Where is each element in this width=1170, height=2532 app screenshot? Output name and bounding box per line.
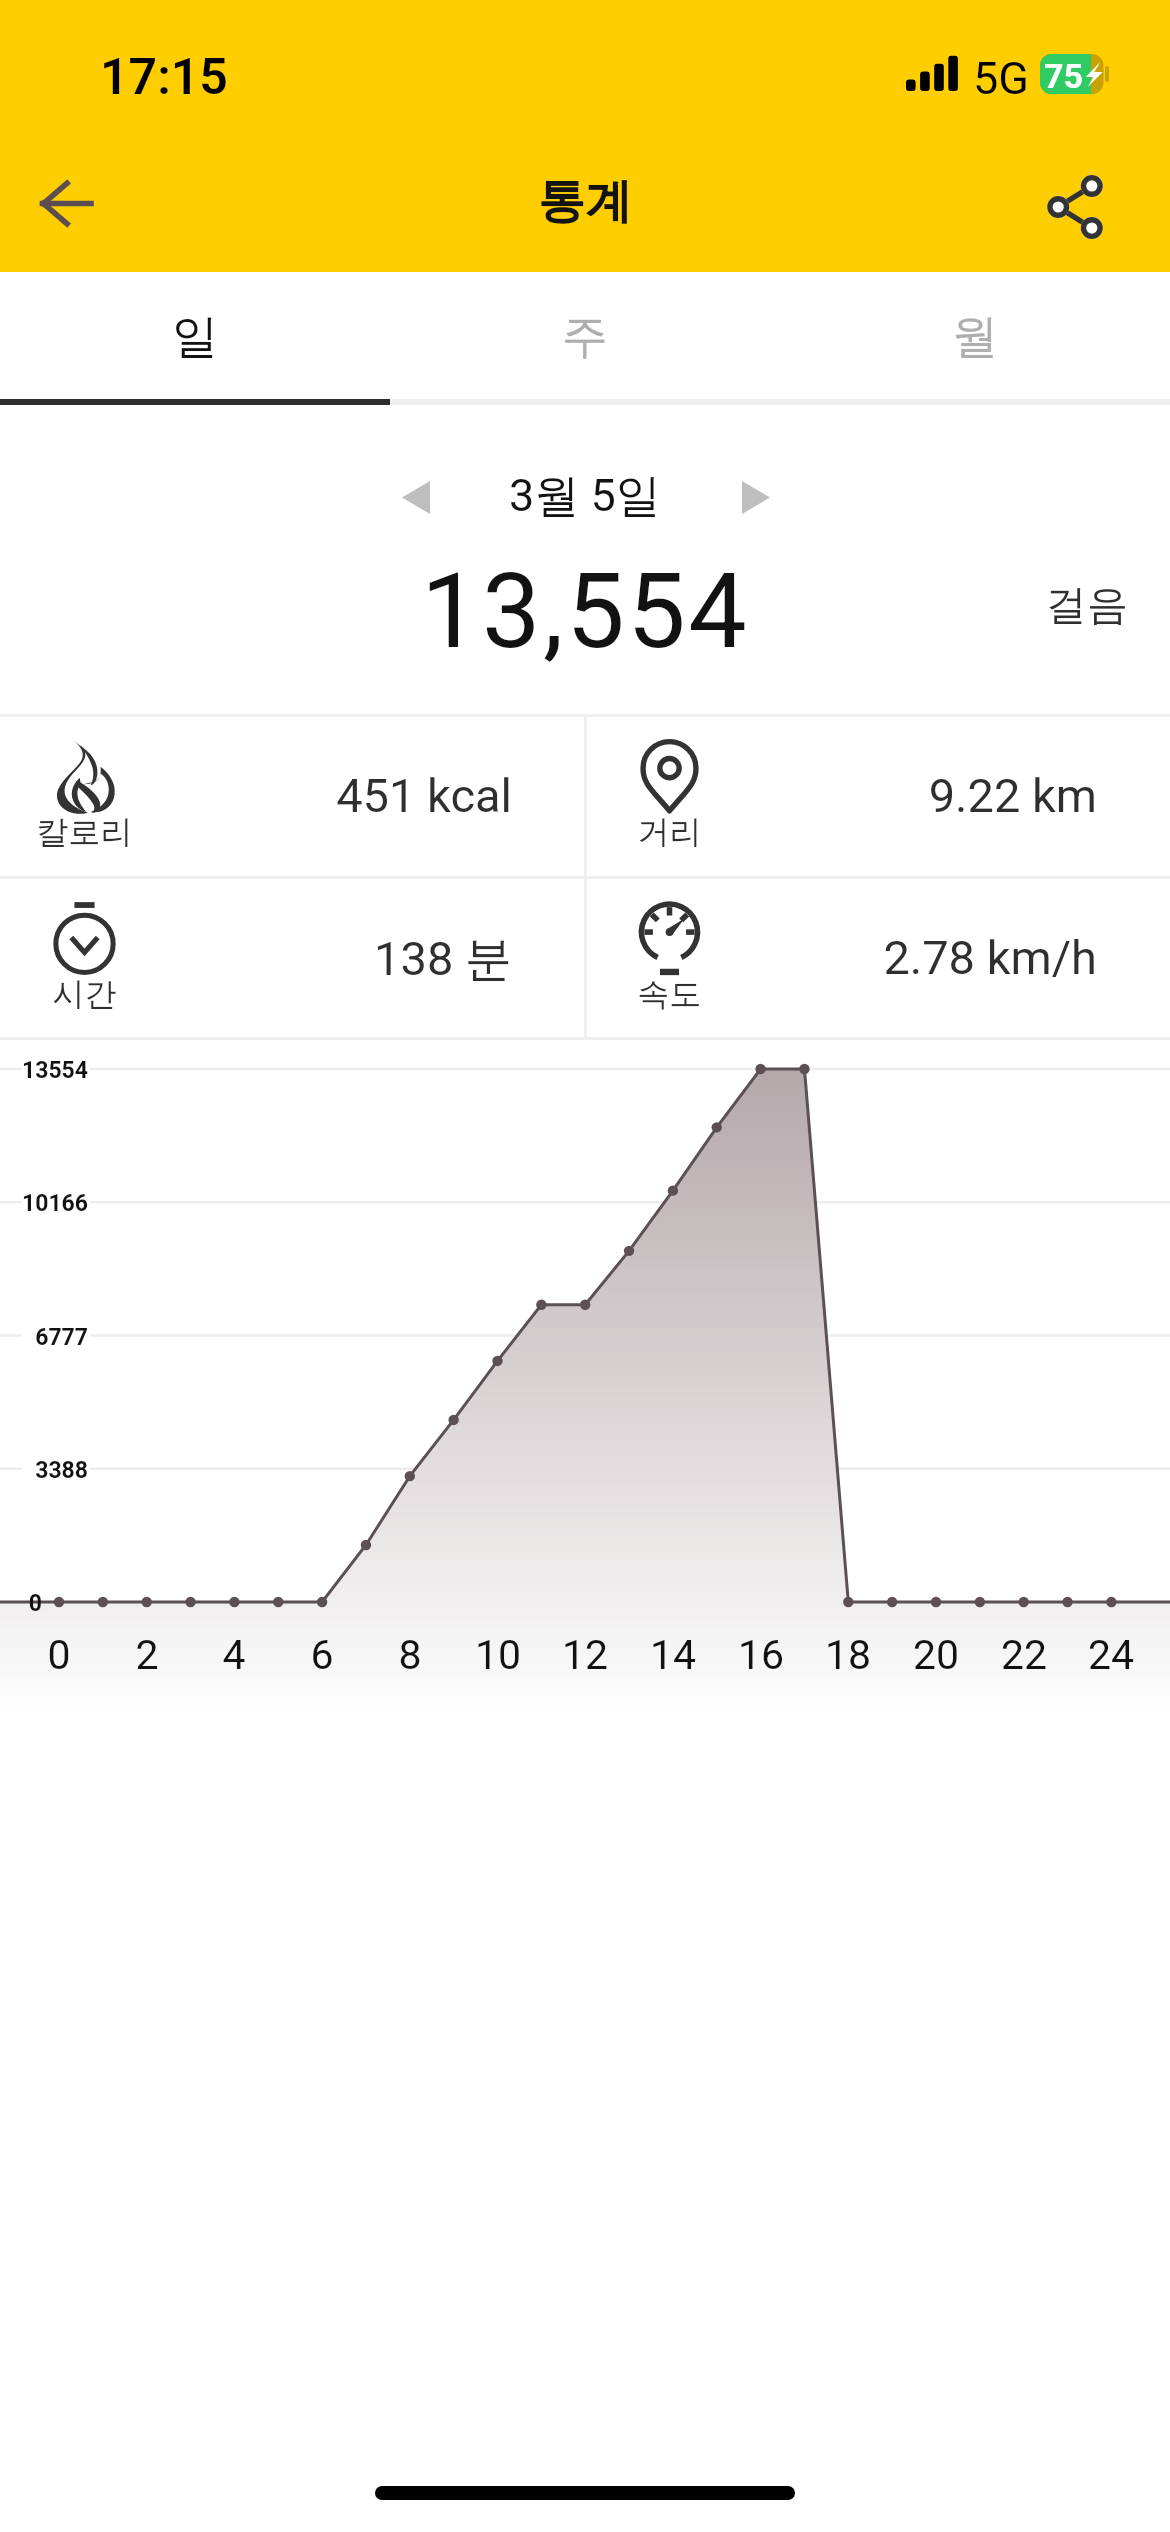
staticText: 10 [458, 1631, 538, 1679]
staticText: 5G [973, 52, 1029, 105]
staticText: 0 [19, 1631, 99, 1679]
staticText: 주 [562, 308, 608, 366]
staticText: 20 [896, 1631, 976, 1679]
button[interactable]: 주 [390, 272, 780, 405]
staticText: 12 [545, 1631, 625, 1679]
staticText: 13554 [0, 1057, 88, 1084]
staticText: 일 [172, 308, 218, 366]
button[interactable]: Next day [720, 457, 792, 537]
staticText: 24 [1071, 1631, 1151, 1679]
button[interactable]: Share [1016, 151, 1134, 263]
staticText: 월 [952, 308, 998, 366]
staticText: 2.78 km/h [725, 930, 1097, 985]
button[interactable]: 거리 [585, 717, 1170, 875]
staticText: 통계 [538, 172, 632, 231]
staticText: 시간 [22, 974, 147, 1014]
button[interactable]: Previous day [380, 457, 452, 537]
staticText: 0 [0, 1590, 42, 1617]
staticText: 451 kcal [140, 768, 512, 823]
staticText: 6777 [0, 1324, 88, 1351]
button[interactable]: 일 [0, 272, 390, 405]
staticText: 18 [808, 1631, 888, 1679]
staticText: 2 [107, 1631, 187, 1679]
button[interactable]: 월 [780, 272, 1170, 405]
staticText: 138 분 [140, 930, 512, 989]
staticText: 22 [984, 1631, 1064, 1679]
button[interactable]: 칼로리 [0, 717, 585, 875]
staticText: 3388 [0, 1457, 88, 1484]
staticText: 9.22 km [725, 768, 1097, 823]
staticText: 3월 5일 [509, 468, 661, 525]
button[interactable]: 속도 [585, 879, 1170, 1037]
staticText: 속도 [607, 974, 732, 1014]
staticText: 16 [721, 1631, 801, 1679]
staticText: 8 [370, 1631, 450, 1679]
staticText: 6 [282, 1631, 362, 1679]
staticText: 17:15 [100, 48, 228, 107]
staticText: 75 [1044, 56, 1084, 96]
button[interactable]: Back [7, 147, 125, 259]
staticText: 걸음 [1046, 580, 1128, 632]
staticText: 칼로리 [22, 812, 147, 852]
staticText: 10166 [0, 1190, 88, 1217]
staticText: 13,554 [421, 551, 750, 673]
staticText: 14 [633, 1631, 713, 1679]
button[interactable]: 시간 [0, 879, 585, 1037]
staticText: 거리 [607, 812, 732, 852]
staticText: 4 [194, 1631, 274, 1679]
